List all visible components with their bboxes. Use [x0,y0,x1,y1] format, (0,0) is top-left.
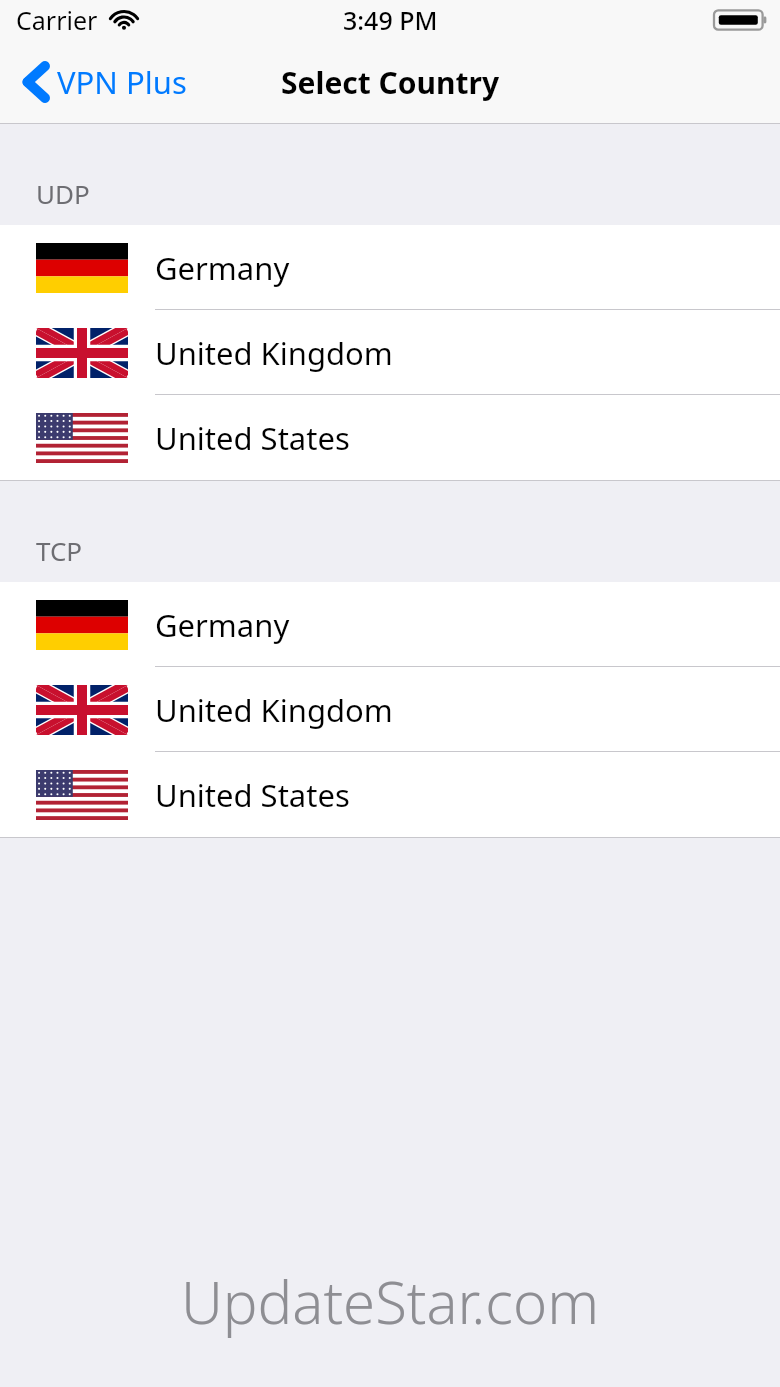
button[interactable]: United Kingdom [0,667,780,752]
button[interactable]: United States [0,395,780,480]
staticText: VPN Plus [57,61,187,103]
staticText: TCP [36,533,83,568]
staticText: United States [155,417,350,459]
button[interactable]: VPN Plus [0,40,203,124]
button[interactable]: Germany [0,582,780,667]
staticText: Germany [155,247,290,289]
staticText: United Kingdom [155,332,393,374]
button[interactable]: United Kingdom [0,310,780,395]
staticText: UDP [36,176,90,211]
button[interactable]: Germany [0,225,780,310]
staticText: United Kingdom [155,689,393,731]
staticText: United States [155,774,350,816]
staticText: 3:49 PM [343,3,438,37]
staticText: Select Country [281,62,500,103]
button[interactable]: United States [0,752,780,837]
staticText: UpdateStar.com [181,1262,599,1341]
staticText: Germany [155,604,290,646]
staticText: Carrier [16,3,98,37]
